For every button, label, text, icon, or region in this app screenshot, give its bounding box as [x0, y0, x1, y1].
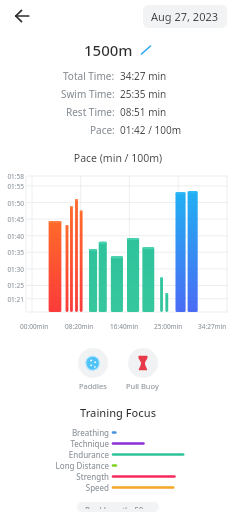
staticText: 08:51 min [120, 105, 167, 119]
staticText: 34:27 min [120, 69, 167, 83]
staticText: 01:25 [0, 281, 24, 290]
staticText: Paddles [79, 381, 107, 391]
staticText: Rest Time: [66, 105, 115, 119]
staticText: Technique [70, 438, 109, 449]
button[interactable]: Pull Buoy [122, 348, 163, 391]
staticText: 25:35 min [120, 87, 167, 101]
staticText: 16:40min [110, 322, 139, 331]
staticText: Total Time: [63, 69, 115, 83]
staticText: Endurance [68, 449, 109, 460]
staticText: 01:35 [0, 248, 24, 257]
staticText: 01:58 [0, 172, 24, 181]
staticText: 1500m [84, 40, 133, 60]
staticText: Speed [85, 482, 109, 493]
staticText: 25:00min [154, 322, 183, 331]
staticText: 01:40 [0, 232, 24, 241]
staticText: Pace (min / 100m) [0, 151, 236, 165]
staticText: Training Focus [0, 405, 236, 420]
staticText: Pool Length: 50m [85, 505, 151, 509]
staticText: Aug 27, 2023 [151, 9, 219, 24]
staticText: Pace: [90, 123, 115, 137]
staticText: Strength [76, 471, 109, 482]
staticText: 34:27min [198, 322, 227, 331]
button[interactable]: Back [8, 2, 36, 30]
staticText: 01:55 [0, 182, 24, 191]
staticText: 01:50 [0, 199, 24, 208]
button[interactable]: Paddles [74, 348, 112, 391]
staticText: Breathing [71, 427, 109, 438]
staticText: 08:20min [65, 322, 94, 331]
staticText: Long Distance [55, 460, 109, 471]
staticText: Pull Buoy [126, 381, 159, 391]
staticText: 01:21 [0, 295, 24, 304]
button[interactable]: Aug 27, 2023 [143, 5, 227, 28]
staticText: 00:00min [20, 322, 49, 331]
staticText: Swim Time: [61, 87, 115, 101]
staticText: 01:45 [0, 215, 24, 224]
button[interactable]: Pool Length: 50m [77, 502, 159, 512]
button[interactable]: Edit distance [139, 43, 153, 57]
staticText: 01:30 [0, 265, 24, 274]
staticText: 01:42 / 100m [120, 123, 181, 137]
